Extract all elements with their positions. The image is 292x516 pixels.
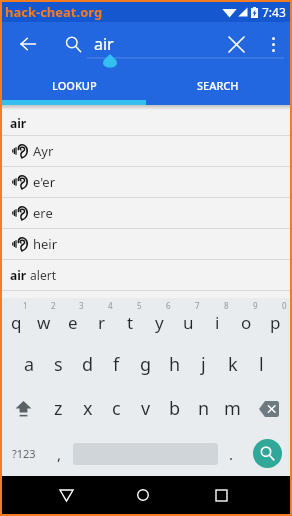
staticText: , (57, 444, 62, 464)
button[interactable]: g (131, 342, 160, 386)
staticText: 4 (108, 300, 113, 311)
staticText: 8 (224, 300, 229, 311)
staticText: x (83, 396, 93, 421)
staticText: alert (27, 267, 57, 283)
staticText: p (270, 311, 281, 334)
staticText: k (228, 352, 238, 377)
staticText: u (183, 311, 194, 334)
button[interactable]: 3 (58, 298, 87, 342)
button[interactable]: Back (2, 22, 54, 66)
button[interactable]: Ayr (2, 136, 290, 166)
button[interactable]: . (218, 431, 245, 476)
staticText: c (112, 396, 121, 421)
button[interactable]: d (73, 342, 102, 386)
staticText: heir (33, 235, 58, 253)
staticText: n (198, 396, 210, 421)
button[interactable]: air (2, 260, 290, 290)
staticText: q (11, 311, 22, 334)
button[interactable]: x (73, 386, 102, 431)
button[interactable]: e'er (2, 167, 290, 197)
button[interactable]: , (46, 431, 73, 476)
button[interactable]: Recents (203, 477, 239, 513)
button[interactable]: 7 (174, 298, 203, 342)
staticText: e (68, 311, 78, 334)
button[interactable]: b (160, 386, 189, 431)
button[interactable]: z (44, 386, 73, 431)
button[interactable]: m (218, 386, 247, 431)
button[interactable]: 9 (232, 298, 261, 342)
staticText: s (54, 352, 63, 377)
staticText: h (169, 352, 181, 377)
button[interactable]: c (102, 386, 131, 431)
button[interactable]: LOOKUP (2, 78, 146, 100)
button[interactable]: 6 (145, 298, 174, 342)
staticText: . (229, 444, 234, 464)
staticText: i (215, 311, 220, 334)
staticText: j (201, 352, 206, 377)
button[interactable]: s (44, 342, 73, 386)
staticText: ere (33, 204, 53, 222)
button[interactable]: 0 (261, 298, 290, 342)
staticText: Ayr (33, 142, 54, 160)
button[interactable]: ?123 (2, 431, 46, 476)
staticText: 0 (282, 300, 287, 311)
button[interactable]: 1 (2, 298, 30, 342)
staticText: g (140, 352, 152, 377)
button[interactable]: heir (2, 229, 290, 259)
button[interactable]: Shift (2, 386, 44, 431)
staticText: air (94, 33, 114, 55)
staticText: 9 (253, 300, 258, 311)
button[interactable]: Search (54, 22, 92, 66)
staticText: z (54, 396, 63, 421)
staticText: 7:43 (262, 4, 286, 20)
button[interactable]: air (2, 110, 290, 135)
button[interactable]: Home (125, 477, 161, 513)
button[interactable]: Backspace (247, 386, 290, 431)
staticText: a (24, 352, 35, 377)
staticText: m (224, 396, 241, 421)
staticText: air (10, 267, 27, 283)
button[interactable]: ere (2, 198, 290, 228)
staticText: SEARCH (197, 78, 239, 93)
staticText: f (113, 352, 120, 377)
staticText: t (127, 311, 134, 334)
staticText: hack-cheat.org (5, 3, 103, 21)
staticText: 3 (79, 300, 84, 311)
button[interactable]: 4 (87, 298, 116, 342)
staticText: 5 (137, 300, 142, 311)
staticText: d (82, 352, 94, 377)
staticText: ?123 (12, 446, 36, 461)
button[interactable]: 8 (203, 298, 232, 342)
button[interactable]: a (15, 342, 44, 386)
staticText: b (169, 396, 181, 421)
staticText: 7 (195, 300, 200, 311)
button[interactable]: n (189, 386, 218, 431)
button[interactable]: 5 (116, 298, 145, 342)
button[interactable]: f (102, 342, 131, 386)
staticText: l (259, 352, 264, 377)
button[interactable]: More options (256, 22, 290, 66)
staticText: r (98, 311, 106, 334)
button[interactable]: SEARCH (146, 78, 290, 100)
staticText: o (241, 311, 252, 334)
staticText: 6 (166, 300, 171, 311)
staticText: w (37, 311, 51, 334)
button[interactable]: Clear (216, 22, 256, 66)
button[interactable]: v (131, 386, 160, 431)
button[interactable]: Back (48, 477, 84, 513)
staticText: air (10, 115, 27, 131)
staticText: y (155, 311, 164, 334)
button[interactable]: j (189, 342, 218, 386)
staticText: 1 (23, 300, 28, 311)
button[interactable]: l (247, 342, 276, 386)
staticText: v (141, 396, 151, 421)
staticText: LOOKUP (52, 78, 97, 93)
button[interactable]: k (218, 342, 247, 386)
staticText: 2 (51, 300, 56, 311)
button[interactable]: 2 (30, 298, 58, 342)
button[interactable]: Search (253, 439, 282, 468)
staticText: e'er (33, 173, 56, 191)
button[interactable]: h (160, 342, 189, 386)
